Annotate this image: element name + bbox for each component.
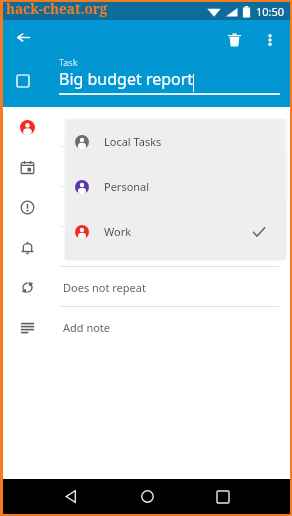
button[interactable]: Local Tasks: [67, 120, 284, 164]
button[interactable]: Back: [32, 479, 109, 514]
button[interactable]: Does not repeat: [3, 267, 290, 307]
button[interactable]: Home: [109, 479, 185, 514]
staticText: hack-cheat.org: [6, 0, 108, 18]
staticText: Work: [104, 224, 132, 239]
button[interactable]: Back: [8, 22, 38, 52]
button[interactable]: Work: [3, 107, 290, 147]
button[interactable]: Delete: [214, 25, 254, 55]
staticText: 10:50: [256, 4, 285, 19]
staticText: Does not repeat: [63, 280, 146, 295]
button[interactable]: No due date: [3, 147, 290, 187]
button[interactable]: Work: [67, 209, 284, 254]
button[interactable]: Add note: [3, 307, 290, 347]
staticText: Task: [59, 56, 78, 68]
staticText: Work: [63, 120, 91, 135]
button[interactable]: No reminder: [3, 227, 290, 267]
button[interactable]: Recents: [185, 479, 261, 514]
button[interactable]: No priority: [3, 187, 290, 227]
staticText: Big budget report: [59, 68, 194, 90]
button[interactable]: More options: [254, 25, 286, 55]
staticText: Personal: [104, 179, 150, 194]
button[interactable]: Mark complete: [9, 67, 37, 95]
staticText: Local Tasks: [104, 134, 162, 149]
button[interactable]: Personal: [67, 164, 284, 209]
staticText: Add note: [63, 320, 111, 335]
